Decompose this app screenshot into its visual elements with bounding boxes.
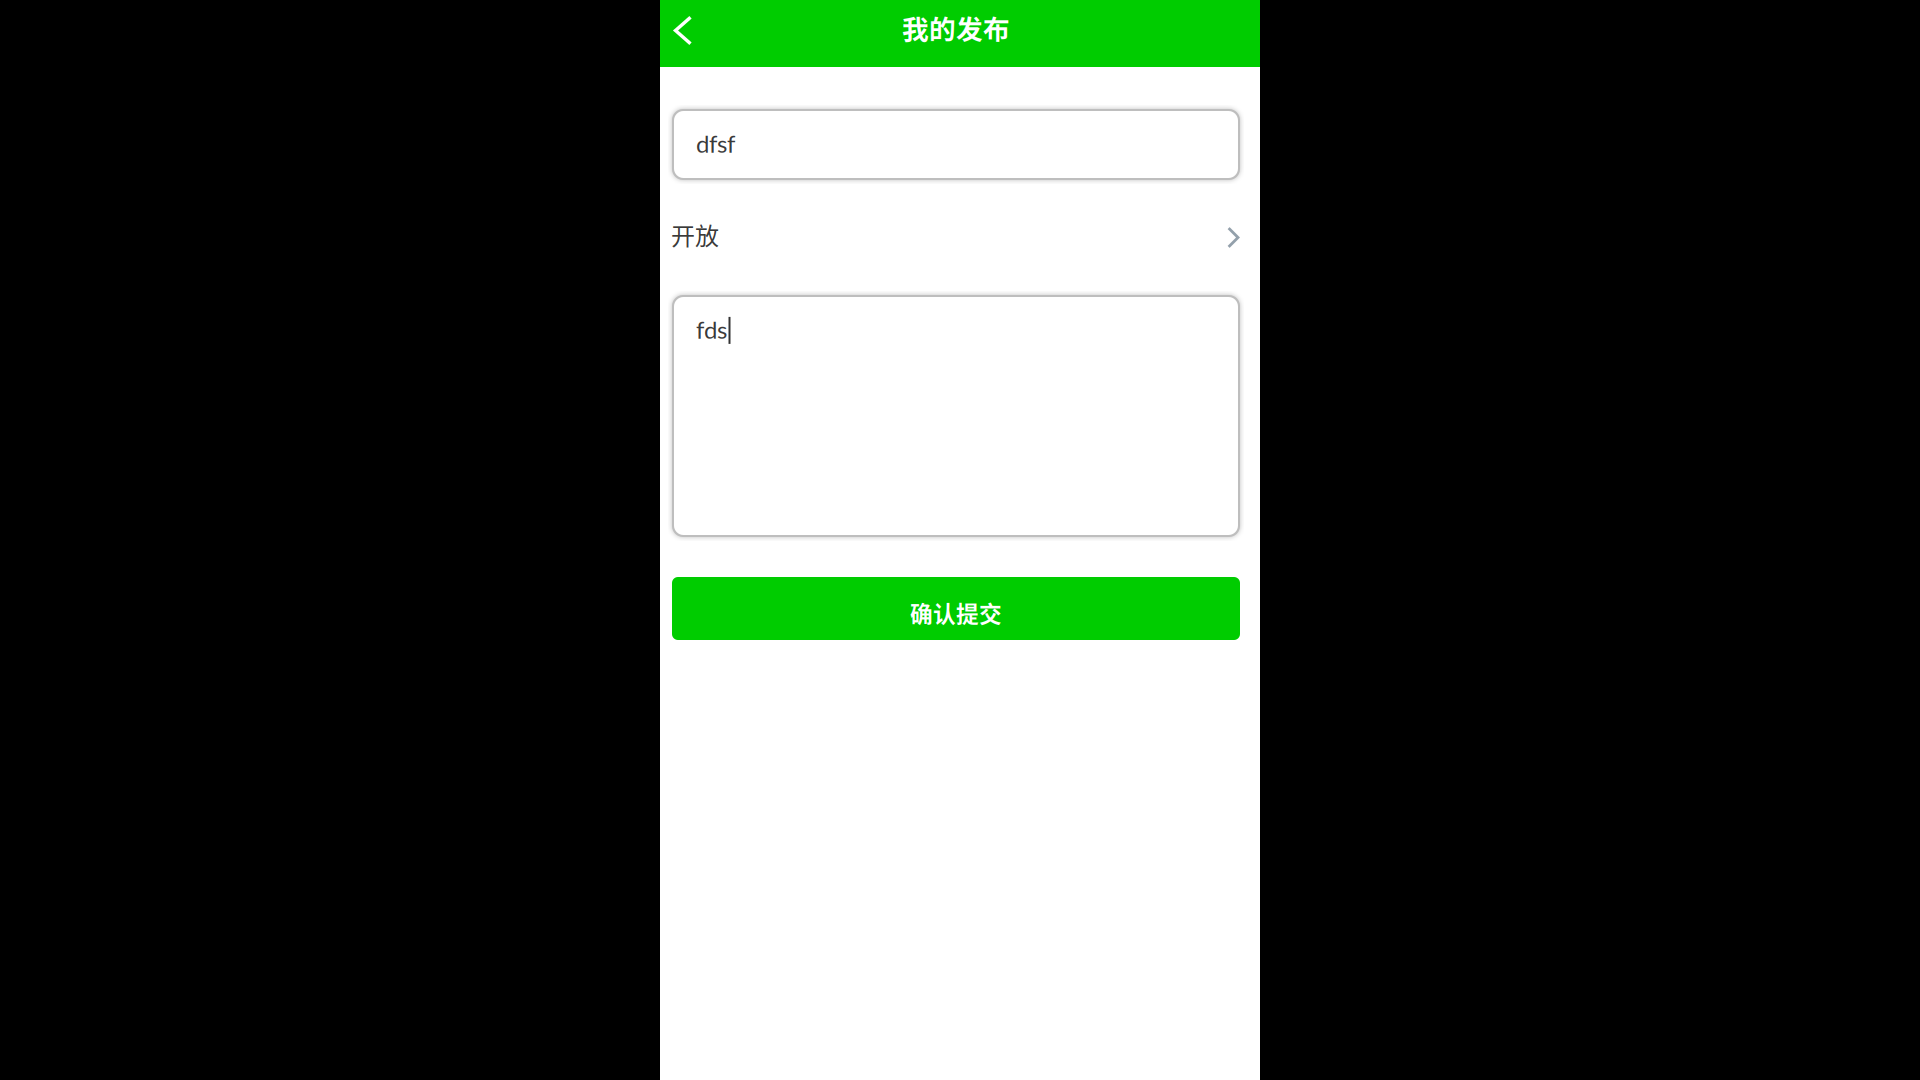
- button[interactable]: 确认提交: [672, 577, 1240, 640]
- staticText: 开放: [671, 217, 719, 252]
- button[interactable]: 开放: [660, 180, 1260, 295]
- staticText: 我的发布: [902, 8, 1010, 47]
- staticText: 确认提交: [910, 596, 1002, 629]
- staticText: fds: [696, 315, 727, 344]
- staticText: dfsf: [696, 129, 735, 158]
- button[interactable]: Back: [660, 0, 712, 67]
